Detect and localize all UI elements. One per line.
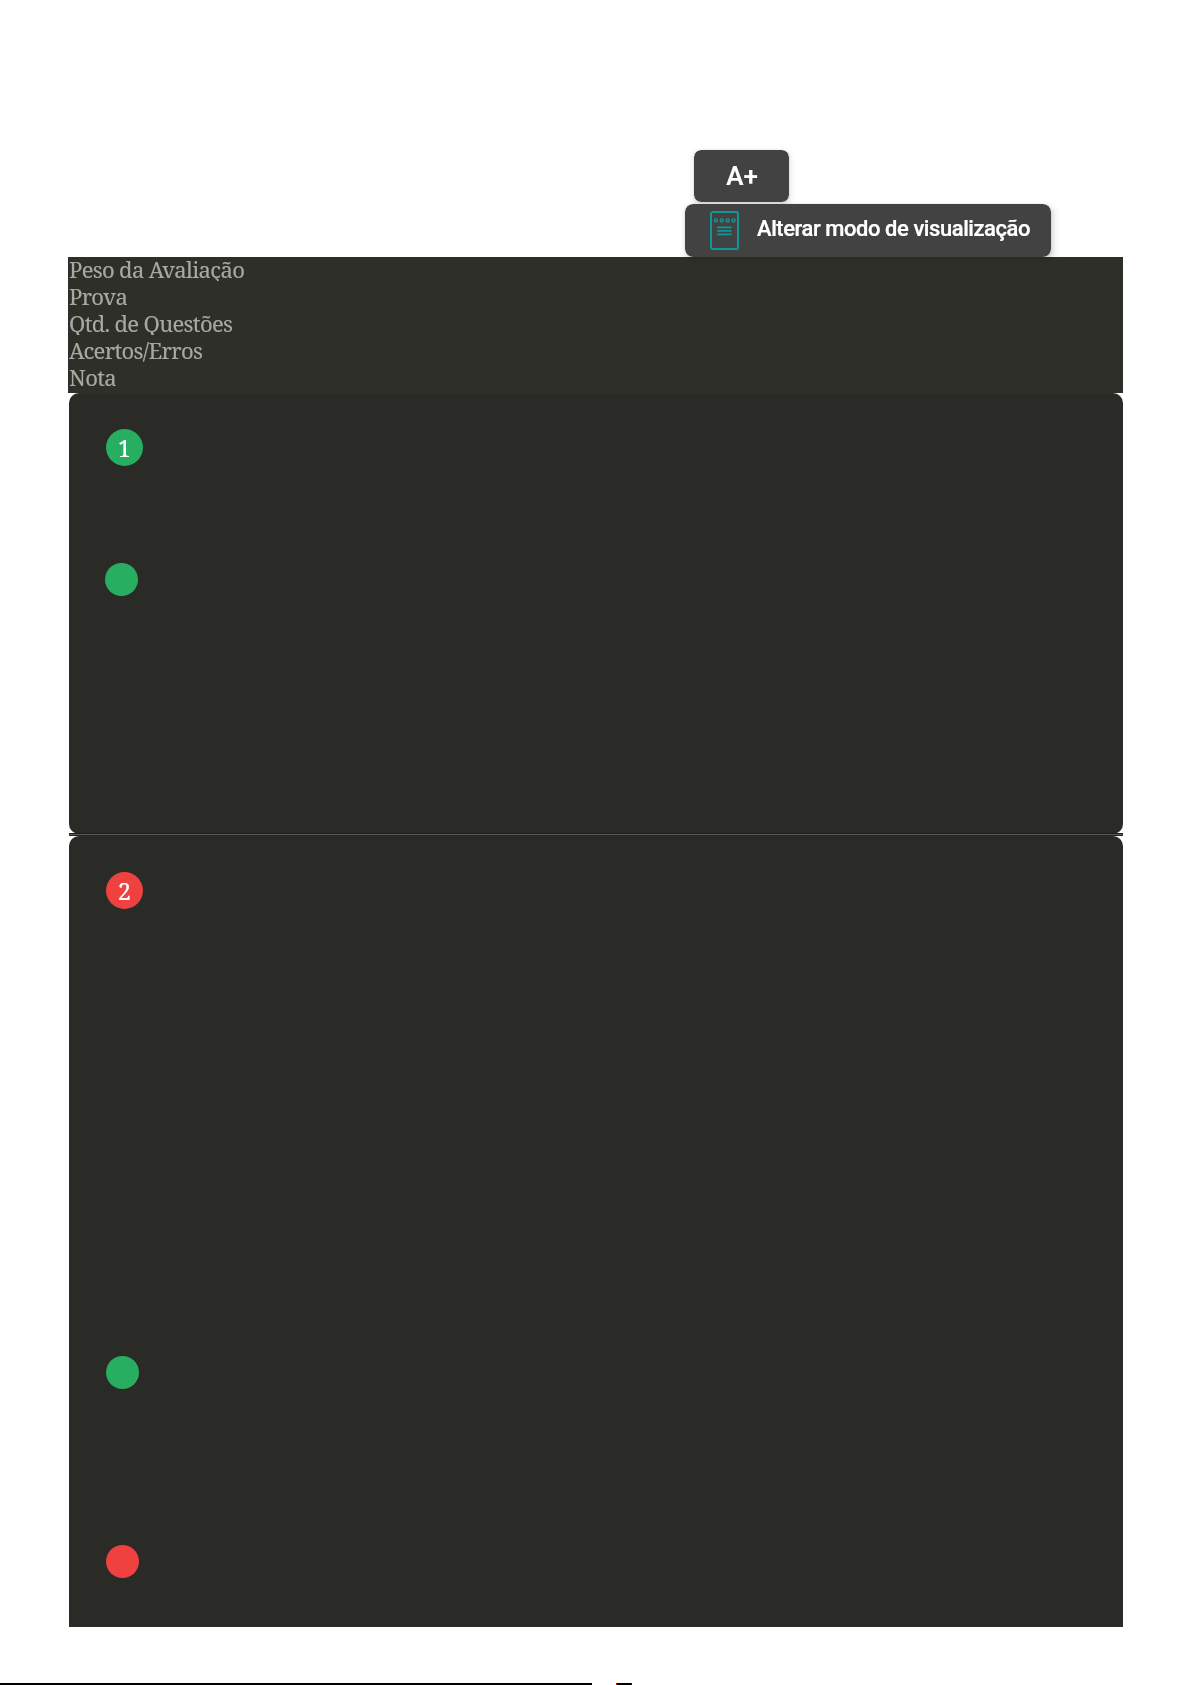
staticText: Peso da Avaliação [69, 254, 245, 281]
staticText: Alterar modo de visualização [757, 216, 1031, 242]
button[interactable] [69, 393, 1123, 834]
other: Alterar modo de visualização [710, 211, 739, 250]
button[interactable]: Alterar modo de visualização [685, 204, 1051, 257]
button[interactable]: 1 [106, 429, 143, 466]
staticText: Qtd. de Questões [69, 308, 233, 335]
button[interactable]: Status [106, 1356, 139, 1389]
button[interactable]: Status [105, 563, 138, 596]
staticText: 2 [118, 875, 131, 906]
staticText: A+ [726, 161, 758, 191]
button[interactable]: 2 [106, 872, 143, 909]
button[interactable]: Status [106, 1545, 139, 1578]
staticText: Prova [69, 281, 128, 308]
button[interactable] [69, 836, 1123, 1627]
staticText: Nota [69, 362, 116, 389]
button[interactable]: A+ [694, 150, 789, 202]
staticText: 1 [118, 432, 131, 463]
staticText: Acertos/Erros [69, 335, 203, 362]
